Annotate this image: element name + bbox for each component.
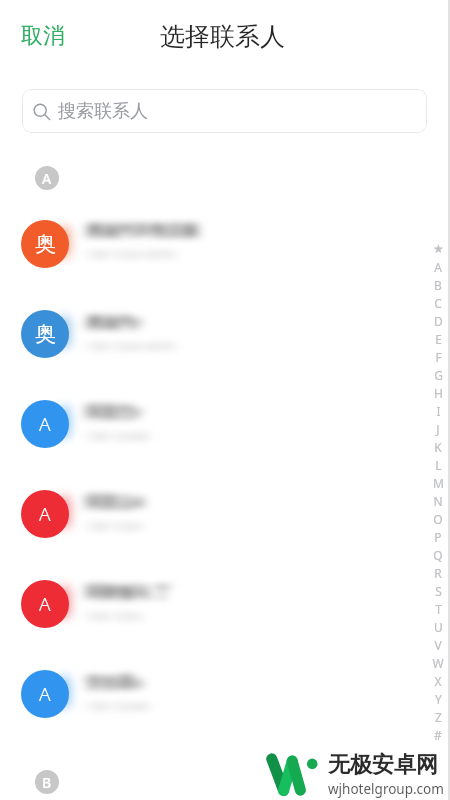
- staticText: D: [434, 313, 443, 329]
- button[interactable]: Y: [430, 690, 446, 708]
- button[interactable]: D: [430, 312, 446, 330]
- button[interactable]: R: [430, 564, 446, 582]
- staticText: B: [434, 277, 442, 293]
- staticText: G: [434, 367, 443, 383]
- staticText: S: [435, 583, 442, 599]
- button[interactable]: Z: [430, 708, 446, 726]
- staticText: 138 1234 5678: [86, 337, 175, 355]
- staticText: E: [435, 331, 442, 347]
- button[interactable]: O: [430, 510, 446, 528]
- button[interactable]: B: [430, 276, 446, 294]
- button[interactable]: V: [430, 636, 446, 654]
- staticText: 138 1234: [86, 517, 142, 535]
- button[interactable]: 取消: [15, 14, 71, 58]
- staticText: F: [435, 349, 442, 365]
- button[interactable]: Search: [22, 89, 427, 133]
- button[interactable]: C: [430, 294, 446, 312]
- staticText: 奥迪汽r: [86, 311, 142, 333]
- staticText: 奥迪汽车售后服: [86, 221, 198, 241]
- button[interactable]: M: [430, 474, 446, 492]
- button[interactable]: U: [430, 618, 446, 636]
- staticText: H: [434, 385, 443, 401]
- staticText: 取消: [21, 22, 65, 50]
- button[interactable]: X: [430, 672, 446, 690]
- staticText: wjhotelgroup.com: [328, 780, 444, 798]
- staticText: #: [434, 727, 442, 743]
- button[interactable]: S: [430, 582, 446, 600]
- button[interactable]: P: [430, 528, 446, 546]
- button[interactable]: ★: [430, 240, 446, 258]
- staticText: I: [436, 403, 441, 419]
- staticText: A: [42, 169, 52, 188]
- button[interactable]: B: [35, 770, 59, 794]
- staticText: O: [433, 511, 443, 527]
- staticText: 阿斯顿马 丁: [86, 581, 171, 603]
- staticText: X: [434, 673, 442, 689]
- button[interactable]: E: [430, 330, 446, 348]
- staticText: 138 1234: [86, 607, 142, 625]
- staticText: 138 12345: [86, 427, 149, 445]
- button[interactable]: 奥: [0, 290, 450, 378]
- button[interactable]: 奥: [0, 200, 450, 288]
- staticText: 无极安卓网: [328, 751, 438, 779]
- button[interactable]: #: [430, 726, 446, 744]
- button[interactable]: A: [0, 470, 450, 558]
- button[interactable]: A: [35, 166, 59, 190]
- button[interactable]: G: [430, 366, 446, 384]
- staticText: K: [434, 439, 442, 455]
- button[interactable]: A: [0, 650, 450, 738]
- other: Search: [33, 103, 51, 121]
- button[interactable]: A: [0, 380, 450, 468]
- button[interactable]: T: [430, 600, 446, 618]
- button[interactable]: W: [430, 654, 446, 672]
- staticText: J: [436, 421, 440, 437]
- staticText: U: [434, 619, 443, 635]
- button[interactable]: F: [430, 348, 446, 366]
- staticText: W: [432, 655, 444, 671]
- staticText: 138 1234 5678: [86, 245, 175, 263]
- staticText: R: [434, 565, 442, 581]
- staticText: A: [434, 259, 442, 275]
- staticText: P: [434, 529, 442, 545]
- staticText: A: [39, 681, 51, 707]
- button[interactable]: A: [0, 560, 450, 648]
- staticText: Q: [433, 547, 443, 563]
- staticText: L: [435, 457, 442, 473]
- staticText: B: [42, 773, 52, 792]
- staticText: A: [39, 501, 51, 527]
- staticText: T: [435, 601, 442, 617]
- staticText: 阿里云4: [86, 491, 144, 513]
- staticText: Z: [435, 709, 442, 725]
- staticText: A: [39, 411, 51, 437]
- button[interactable]: H: [430, 384, 446, 402]
- staticText: 138 12345: [86, 697, 149, 715]
- staticText: M: [433, 475, 444, 491]
- staticText: ★: [433, 242, 444, 256]
- button[interactable]: K: [430, 438, 446, 456]
- staticText: 选择联系人: [160, 21, 285, 52]
- button[interactable]: Q: [430, 546, 446, 564]
- button[interactable]: A: [430, 258, 446, 276]
- staticText: 安吉星s: [86, 671, 143, 693]
- staticText: 奥: [35, 321, 56, 347]
- staticText: V: [434, 637, 442, 653]
- button[interactable]: I: [430, 402, 446, 420]
- button[interactable]: J: [430, 420, 446, 438]
- staticText: 搜索联系人: [58, 100, 148, 123]
- button[interactable]: N: [430, 492, 446, 510]
- staticText: C: [434, 295, 442, 311]
- staticText: A: [39, 591, 51, 617]
- button[interactable]: L: [430, 456, 446, 474]
- staticText: N: [433, 493, 443, 509]
- staticText: 阿里巴r: [86, 401, 142, 423]
- staticText: Y: [435, 691, 442, 707]
- staticText: 奥: [35, 231, 56, 257]
